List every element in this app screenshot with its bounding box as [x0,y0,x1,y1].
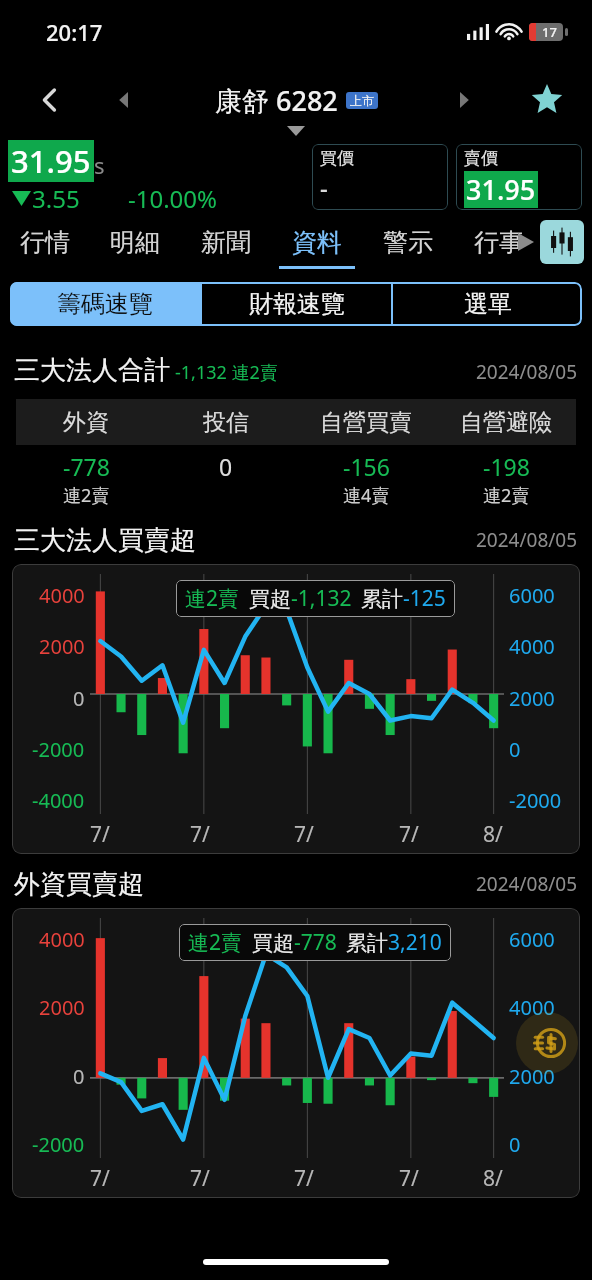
staticText: 7/5 [90,1164,110,1198]
staticText: 連2賣 [188,928,243,957]
staticText: 0 [73,1063,85,1090]
button[interactable]: 4000 [12,564,580,854]
staticText: 0 [73,685,85,712]
staticText: 明細 [110,227,160,258]
staticText: 3.55 [32,182,80,214]
staticText: 31.95 [466,171,536,208]
staticText: 8/5 [483,820,504,854]
staticText: 三大法人合計 [14,354,170,387]
staticText: 7/30 [399,1164,420,1198]
button[interactable]: 籌碼速覽 [10,282,200,326]
staticText: 0 [509,736,521,763]
button[interactable]: 4000 [12,908,580,1198]
button[interactable]: Rewards [516,1012,578,1074]
button[interactable]: Candlestick chart [540,220,584,264]
staticText: 三大法人買賣超 [14,524,196,557]
staticText: 行情 [20,227,70,258]
staticText: 行事 [474,227,524,258]
staticText: -2000 [32,736,85,763]
button[interactable]: 行事 [453,214,544,270]
staticText: 連2賣 [185,584,240,613]
staticText: 上市 [350,93,374,108]
staticText: 4000 [39,582,85,609]
staticText: 外資 [63,408,109,437]
staticText: 買價 [320,148,354,169]
staticText: 3,210 [388,928,442,957]
staticText: 買超 [252,930,294,956]
staticText: 賣價 [464,148,498,169]
staticText: 籌碼速覽 [57,289,153,319]
staticText: 6000 [509,926,555,953]
button[interactable]: 行情 [0,214,90,270]
staticText: 警示 [383,227,433,258]
staticText: 31.95 [11,140,91,182]
staticText: 4000 [509,633,555,660]
staticText: 7/12 [190,820,210,854]
button[interactable]: 明細 [90,214,180,270]
button[interactable]: 選單 [393,282,582,326]
staticText: 7/12 [190,1164,210,1198]
staticText: -10.00% [128,182,218,214]
staticText: 2024/08/05 [476,527,578,553]
staticText: 6000 [509,582,555,609]
staticText: -125 [403,584,446,613]
staticText: 4000 [39,926,85,953]
staticText: 7/5 [90,820,110,854]
staticText: 選單 [464,289,512,319]
button[interactable]: Next stock [444,80,484,120]
staticText: 7/19 [294,820,315,854]
staticText: 2000 [39,994,85,1021]
staticText: 自營買賣 [320,408,412,437]
staticText: 7/19 [294,1164,315,1198]
staticText: -2000 [32,1131,85,1158]
staticText: 康舒 6282 [215,82,338,119]
staticText: 新聞 [201,227,251,258]
staticText: -778 [63,451,110,482]
staticText: 外資買賣超 [14,868,144,901]
staticText: 買超 [249,586,291,612]
staticText: 投信 [203,408,249,437]
staticText: -4000 [32,787,85,814]
staticText: -2000 [509,787,562,814]
staticText: -1,132 [291,584,352,613]
staticText: 累計 [346,930,388,956]
button[interactable]: 財報速覽 [202,282,391,326]
staticText: 2024/08/05 [476,871,578,897]
staticText: 2000 [509,1063,555,1090]
button[interactable]: Back [30,80,70,120]
staticText: - [320,171,328,204]
staticText: 0 [509,1131,521,1158]
staticText: 7/30 [399,820,420,854]
staticText: -198 [483,451,530,482]
staticText: 4000 [509,994,555,1021]
staticText: -1,132 連2賣 [175,360,278,385]
button[interactable]: 買價 [312,144,448,210]
staticText: 2000 [509,685,555,712]
button[interactable]: 資料 [271,214,362,270]
staticText: 8/5 [483,1164,504,1198]
staticText: -778 [294,928,337,957]
staticText: s [94,150,105,180]
staticText: 20:17 [46,17,103,47]
button[interactable]: Previous stock [104,80,144,120]
staticText: 0 [219,451,233,482]
staticText: 財報速覽 [249,289,345,319]
staticText: 累計 [361,586,403,612]
staticText: 連4賣 [343,483,390,508]
staticText: 2000 [39,633,85,660]
button[interactable]: 警示 [362,214,453,270]
staticText: 連2賣 [63,483,110,508]
staticText: 2024/08/05 [476,359,578,385]
button[interactable]: Favorite [524,77,570,123]
staticText: -156 [343,451,390,482]
staticText: 資料 [292,227,342,258]
button[interactable]: 賣價 [456,144,582,210]
staticText: 17 [542,23,557,41]
staticText: 自營避險 [460,408,552,437]
button[interactable]: 新聞 [180,214,271,270]
staticText: 連2賣 [483,483,530,508]
